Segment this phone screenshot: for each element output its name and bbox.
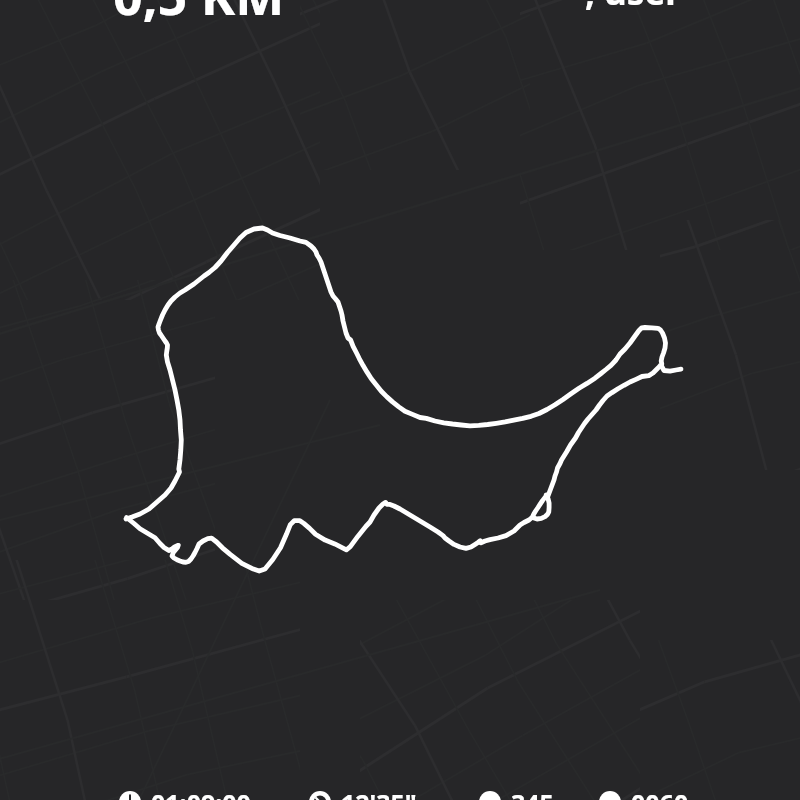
button[interactable]: Elevation <box>599 785 689 800</box>
staticText: 12'35" <box>341 786 417 800</box>
staticText: 0060 <box>631 786 689 800</box>
staticText: 0,5 KM <box>113 0 285 30</box>
staticText: 01:09:00 <box>151 786 251 800</box>
staticText: , user <box>585 0 681 16</box>
staticText: 345 <box>511 786 554 800</box>
button[interactable]: Pace <box>309 785 417 800</box>
button[interactable]: Calories <box>479 785 554 800</box>
button[interactable]: , user <box>585 0 681 16</box>
button[interactable]: 0,5 KM <box>113 0 285 30</box>
button[interactable]: Duration <box>119 785 251 800</box>
